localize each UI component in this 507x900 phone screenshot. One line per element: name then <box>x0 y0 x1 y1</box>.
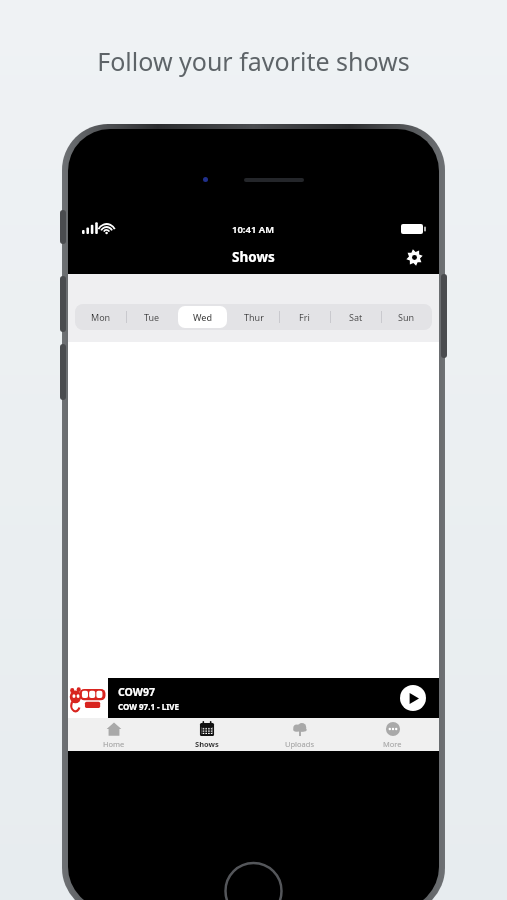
button[interactable]: Mon <box>75 304 126 330</box>
staticText: Home <box>103 739 125 749</box>
button[interactable]: Sun <box>381 304 432 330</box>
staticText: 10:41 AM <box>232 223 275 236</box>
button[interactable]: COW97 <box>68 678 439 718</box>
staticText: COW97 <box>118 685 155 699</box>
staticText: More <box>383 739 402 749</box>
staticText: Shows <box>232 248 275 266</box>
staticText: Thur <box>244 311 264 323</box>
button[interactable]: Uploads <box>253 718 346 751</box>
button[interactable]: Play <box>400 685 426 711</box>
staticText: COW 97.1 - LIVE <box>118 701 179 712</box>
staticText: Mon <box>91 311 111 323</box>
button[interactable]: Home <box>68 718 160 751</box>
button[interactable]: Tue <box>126 304 177 330</box>
staticText: Sat <box>349 311 363 323</box>
staticText: Wed <box>193 311 213 323</box>
staticText: Sun <box>398 311 415 323</box>
button[interactable]: Fri <box>279 304 330 330</box>
staticText: Follow your favorite shows <box>97 44 410 78</box>
staticText: Uploads <box>285 739 314 749</box>
button[interactable]: Shows <box>160 718 253 751</box>
button[interactable]: Sat <box>330 304 381 330</box>
button[interactable]: Settings <box>401 244 427 270</box>
staticText: Fri <box>299 311 310 323</box>
button[interactable]: Thur <box>228 304 279 330</box>
staticText: Tue <box>144 311 160 323</box>
button[interactable]: More <box>346 718 439 751</box>
button[interactable]: Wed <box>177 304 228 330</box>
staticText: Shows <box>195 739 219 749</box>
